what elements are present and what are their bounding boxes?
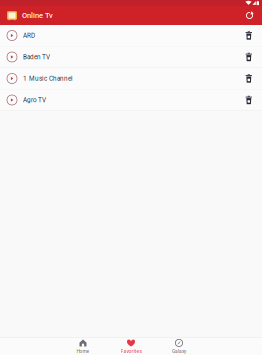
button[interactable]: 1 Music Channel <box>0 68 262 89</box>
staticText: ARD <box>23 32 35 39</box>
button[interactable]: Baden TV <box>0 46 262 67</box>
staticText: Favorites <box>120 348 141 354</box>
staticText: 1 Music Channel <box>23 75 73 82</box>
staticText: Galaxy <box>172 348 186 354</box>
staticText: Baden TV <box>23 53 50 61</box>
staticText: Agro TV <box>23 96 46 104</box>
staticText: Home <box>76 348 89 354</box>
button[interactable]: Favorites <box>107 338 155 355</box>
button[interactable]: Home <box>59 338 107 355</box>
staticText: Online Tv <box>22 11 53 20</box>
button[interactable]: Galaxy <box>155 338 203 355</box>
button[interactable]: Refresh <box>239 6 262 25</box>
button[interactable]: Agro TV <box>0 89 262 110</box>
button[interactable]: ARD <box>0 25 262 46</box>
